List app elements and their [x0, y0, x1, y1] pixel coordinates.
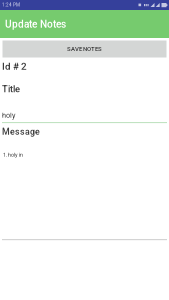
staticText: Title [2, 84, 20, 94]
staticText: 1:24 PM [2, 2, 20, 8]
button[interactable]: SAVE NOTES [2, 40, 166, 57]
staticText: Message [2, 127, 40, 137]
staticText: SAVE NOTES [67, 45, 102, 52]
staticText: Id # 2 [2, 60, 27, 72]
staticText: Update Notes [5, 18, 66, 30]
staticText: holy [2, 111, 15, 120]
staticText: 1. holy in [3, 152, 23, 158]
